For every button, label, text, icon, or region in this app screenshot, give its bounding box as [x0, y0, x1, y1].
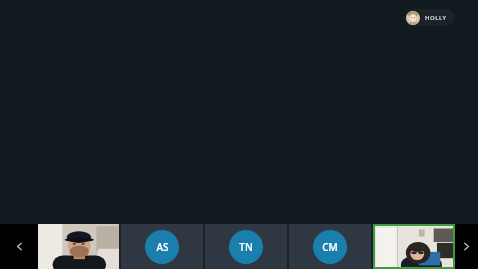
button[interactable]: CM [289, 224, 371, 269]
button[interactable]: Previous participants [0, 224, 38, 269]
staticText: HOLLY [425, 14, 447, 22]
staticText: AS [156, 240, 169, 254]
button[interactable]: AS [121, 224, 203, 269]
button[interactable]: HOLLY [404, 9, 455, 26]
button[interactable]: Participant video [38, 224, 119, 269]
staticText: CM [322, 240, 338, 254]
button[interactable]: Next participants [455, 224, 478, 269]
button[interactable]: Active speaker video [373, 224, 455, 269]
staticText: TN [239, 240, 253, 254]
button[interactable]: TN [205, 224, 287, 269]
